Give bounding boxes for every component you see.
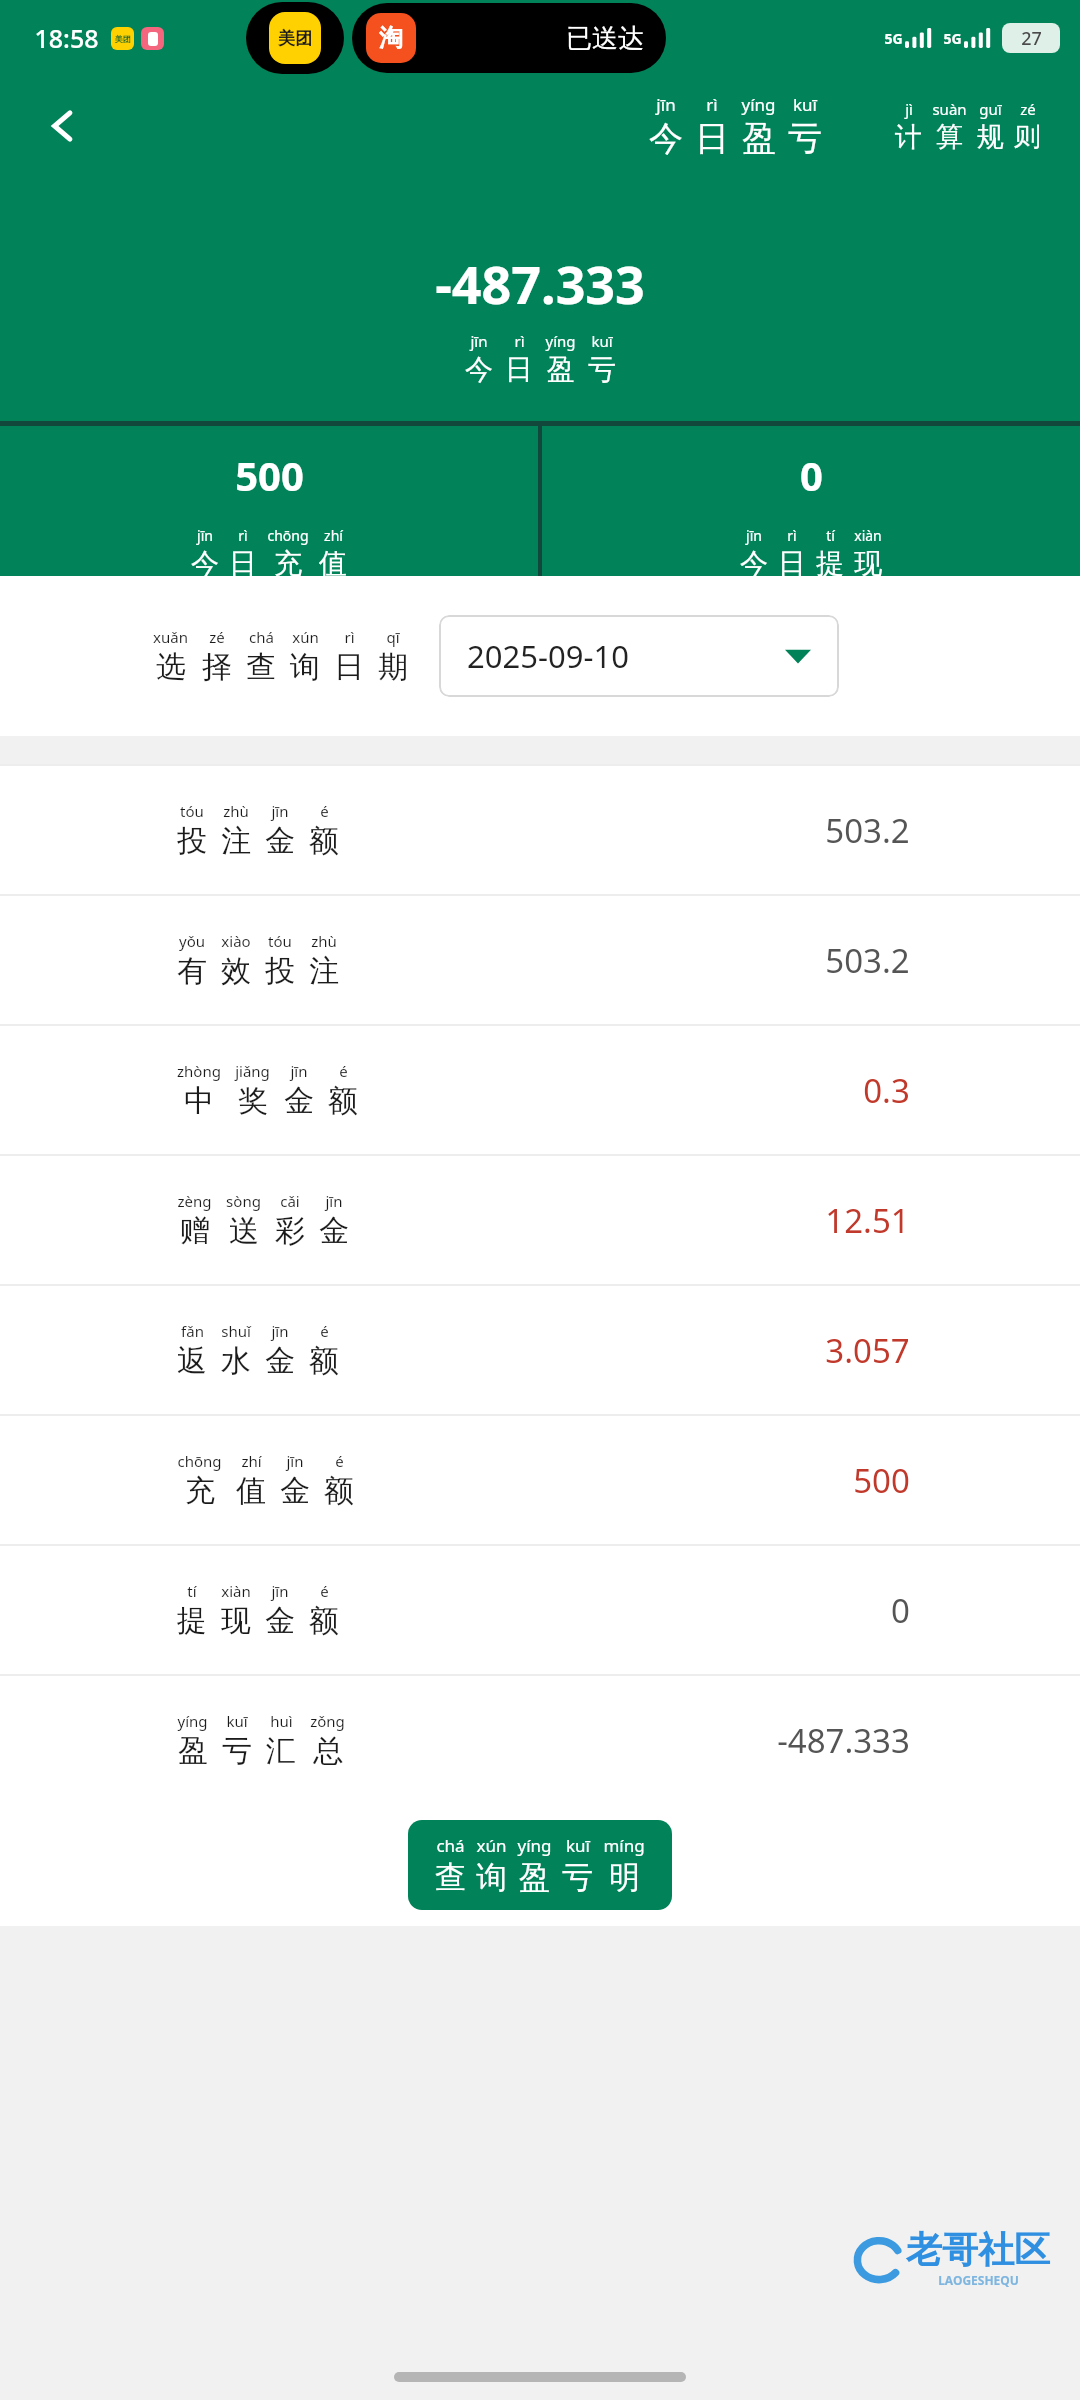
button[interactable]: yíng	[0, 1676, 1080, 1804]
staticText: 赠	[180, 1212, 210, 1250]
staticText: 美团	[278, 28, 312, 49]
staticText: jīn	[271, 801, 289, 821]
staticText: zèng	[177, 1191, 212, 1211]
staticText: zé	[209, 627, 225, 647]
staticText: 询	[290, 648, 320, 686]
staticText: 提	[816, 546, 844, 576]
staticText: 0	[800, 448, 823, 502]
staticText: é	[339, 1061, 348, 1081]
button[interactable]: jì	[890, 99, 1046, 154]
staticText: é	[320, 801, 329, 821]
staticText: fǎn	[181, 1321, 204, 1341]
staticText: 投	[265, 952, 295, 990]
staticText: 中	[184, 1082, 214, 1120]
staticText: 择	[202, 648, 232, 686]
button[interactable]: yǒu	[0, 896, 1080, 1024]
staticText: 今	[191, 546, 219, 576]
staticText: 值	[319, 546, 347, 576]
staticText: é	[320, 1581, 329, 1601]
staticText: zhí	[241, 1451, 262, 1471]
staticText: 日	[334, 648, 364, 686]
staticText: 现	[221, 1602, 251, 1640]
button[interactable]: chōng	[0, 1416, 1080, 1544]
staticText: xún	[476, 1834, 507, 1857]
staticText: 500	[853, 1458, 910, 1503]
staticText: 金	[265, 822, 295, 860]
staticText: kuī	[793, 93, 817, 116]
button[interactable]: 500	[0, 426, 538, 576]
staticText: 已送达	[566, 22, 644, 55]
staticText: xiàn	[854, 526, 882, 545]
staticText: zé	[1020, 99, 1036, 119]
staticText: 日	[778, 546, 806, 576]
button[interactable]: tóu	[0, 766, 1080, 894]
staticText: 则	[1014, 120, 1041, 154]
button[interactable]: chá	[408, 1820, 672, 1910]
staticText: jīn	[325, 1191, 343, 1211]
staticText: 今	[740, 546, 768, 576]
staticText: 查	[435, 1858, 466, 1897]
button[interactable]: zhòng	[0, 1026, 1080, 1154]
staticText: xiào	[221, 931, 251, 951]
staticText: 规	[977, 120, 1004, 154]
button[interactable]: jīn	[643, 93, 828, 160]
staticText: 注	[309, 952, 339, 990]
staticText: 27	[1021, 26, 1042, 51]
button[interactable]: Back	[40, 104, 84, 148]
staticText: zhí	[324, 526, 343, 545]
staticText: 提	[177, 1602, 207, 1640]
staticText: míng	[603, 1834, 645, 1857]
staticText: 现	[854, 546, 882, 576]
staticText: 期	[378, 648, 408, 686]
button[interactable]: fǎn	[0, 1286, 1080, 1414]
button[interactable]: 2025-09-10	[439, 615, 839, 697]
staticText: xiàn	[221, 1581, 251, 1601]
staticText: 盈	[547, 352, 575, 387]
staticText: 返	[177, 1342, 207, 1380]
staticText: tóu	[180, 801, 204, 821]
staticText: 日	[695, 117, 729, 160]
staticText: 效	[221, 952, 251, 990]
staticText: 淘	[379, 23, 403, 53]
button[interactable]: zèng	[0, 1156, 1080, 1284]
staticText: rì	[344, 627, 355, 647]
staticText: cǎi	[280, 1191, 300, 1211]
staticText: 送	[229, 1212, 259, 1250]
staticText: 金	[284, 1082, 314, 1120]
button[interactable]: 0	[542, 426, 1080, 576]
staticText: 3.057	[825, 1328, 910, 1373]
staticText: 美团	[115, 34, 131, 44]
staticText: jīn	[656, 93, 676, 116]
staticText: kuī	[226, 1711, 248, 1731]
staticText: xuǎn	[153, 627, 188, 647]
staticText: 亏	[788, 117, 822, 160]
staticText: guī	[979, 99, 1002, 119]
staticText: -487.333	[777, 1718, 910, 1763]
button[interactable]: tí	[0, 1546, 1080, 1674]
staticText: 老哥社区	[906, 2227, 1050, 2272]
staticText: 503.2	[825, 938, 910, 983]
staticText: 日	[229, 546, 257, 576]
staticText: 额	[309, 1342, 339, 1380]
staticText: é	[320, 1321, 329, 1341]
staticText: 亏	[222, 1732, 252, 1770]
staticText: chōng	[267, 526, 309, 545]
staticText: 亏	[588, 352, 616, 387]
staticText: 503.2	[825, 808, 910, 853]
staticText: sòng	[226, 1191, 261, 1211]
staticText: jīn	[271, 1321, 289, 1341]
staticText: jīn	[470, 331, 488, 351]
staticText: suàn	[932, 99, 967, 119]
staticText: 0.3	[863, 1068, 910, 1113]
staticText: jīn	[286, 1451, 304, 1471]
staticText: 日	[505, 352, 533, 387]
staticText: chōng	[177, 1451, 222, 1471]
staticText: yíng	[177, 1711, 208, 1731]
staticText: 0	[891, 1588, 910, 1633]
staticText: rì	[706, 93, 718, 116]
staticText: 查	[246, 648, 276, 686]
staticText: 5G	[884, 29, 903, 48]
staticText: 5G	[943, 29, 962, 48]
staticText: 金	[265, 1342, 295, 1380]
staticText: 今	[465, 352, 493, 387]
